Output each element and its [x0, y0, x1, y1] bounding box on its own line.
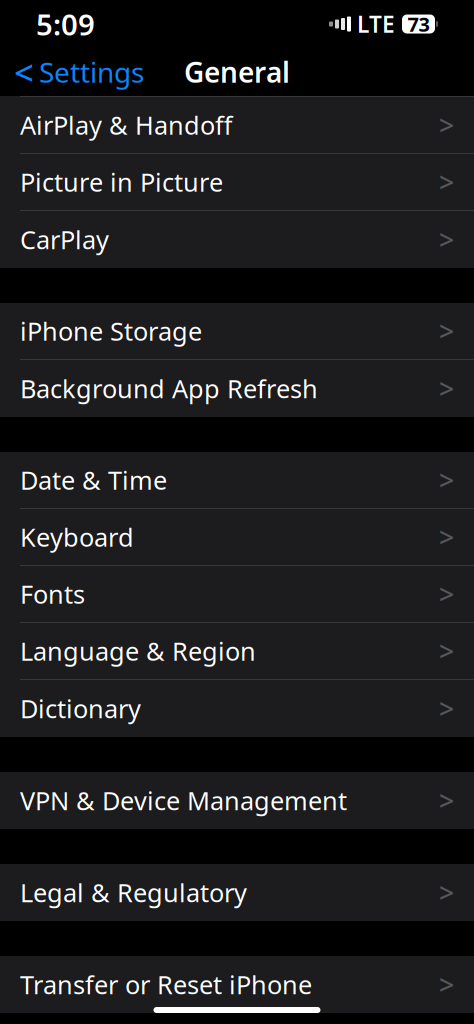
staticText: >: [439, 519, 454, 555]
staticText: Legal & Regulatory: [20, 876, 247, 909]
staticText: >: [439, 633, 454, 669]
staticText: >: [439, 222, 454, 257]
button[interactable]: AirPlay & Handoff: [0, 97, 474, 154]
staticText: Background App Refresh: [20, 372, 318, 405]
staticText: Language & Region: [20, 634, 256, 668]
staticText: Dictionary: [20, 692, 141, 725]
staticText: iPhone Storage: [20, 314, 202, 348]
button[interactable]: Keyboard: [0, 509, 474, 566]
button[interactable]: Legal & Regulatory: [0, 864, 474, 921]
staticText: >: [439, 783, 454, 818]
staticText: >: [439, 691, 454, 726]
staticText: >: [439, 107, 454, 143]
staticText: Picture in Picture: [20, 165, 223, 199]
staticText: Transfer or Reset iPhone: [20, 968, 312, 1001]
staticText: >: [439, 313, 454, 349]
staticText: >: [439, 164, 454, 200]
button[interactable]: <: [0, 49, 158, 95]
staticText: 5:09: [36, 4, 95, 43]
staticText: Date & Time: [20, 463, 167, 497]
staticText: >: [439, 576, 454, 612]
button[interactable]: Dictionary: [0, 680, 474, 737]
button[interactable]: Fonts: [0, 566, 474, 623]
button[interactable]: Transfer or Reset iPhone: [0, 956, 474, 1013]
staticText: >: [439, 875, 454, 910]
button[interactable]: Language & Region: [0, 623, 474, 680]
staticText: >: [439, 967, 454, 1002]
button[interactable]: VPN & Device Management: [0, 772, 474, 829]
staticText: >: [439, 462, 454, 498]
staticText: 73: [407, 11, 429, 37]
button[interactable]: CarPlay: [0, 211, 474, 268]
staticText: <: [14, 49, 34, 95]
button[interactable]: iPhone Storage: [0, 303, 474, 360]
staticText: CarPlay: [20, 223, 109, 256]
staticText: LTE: [357, 9, 395, 39]
staticText: Settings: [39, 53, 144, 91]
button[interactable]: Background App Refresh: [0, 360, 474, 417]
button[interactable]: Picture in Picture: [0, 154, 474, 211]
button[interactable]: Date & Time: [0, 452, 474, 509]
staticText: General: [184, 53, 290, 91]
staticText: VPN & Device Management: [20, 784, 347, 817]
staticText: Fonts: [20, 577, 85, 611]
staticText: >: [439, 371, 454, 406]
staticText: Keyboard: [20, 520, 134, 554]
staticText: AirPlay & Handoff: [20, 108, 232, 142]
